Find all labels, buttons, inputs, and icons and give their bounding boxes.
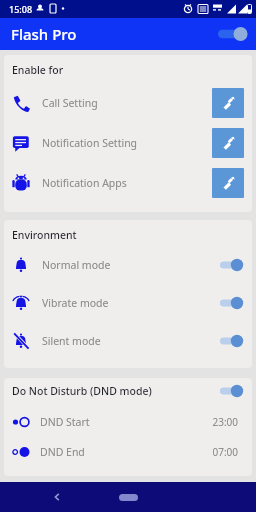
button[interactable]: DND End [4, 440, 252, 464]
button[interactable]: Configure Notification Setting [212, 128, 244, 158]
staticText: Vibrate mode [42, 296, 212, 310]
button[interactable]: Home [113, 489, 143, 505]
button[interactable]: Toggle [212, 256, 244, 274]
staticText: Do Not Disturb (DND mode) [12, 384, 212, 398]
button[interactable]: Master flash toggle [214, 23, 250, 45]
staticText: DND Start [40, 415, 212, 429]
staticText: Silent mode [42, 334, 212, 348]
button[interactable]: Silent mode [4, 322, 252, 360]
staticText: Enable for [12, 63, 64, 77]
button[interactable]: Call Setting [4, 83, 252, 123]
staticText: 23:00 [212, 415, 238, 429]
staticText: Notification Setting [42, 136, 212, 150]
staticText: Normal mode [42, 258, 212, 272]
staticText: Environment [12, 228, 77, 242]
button[interactable]: Normal mode [4, 246, 252, 284]
button[interactable]: Do Not Disturb (DND mode) [4, 378, 252, 404]
button[interactable]: Notification Setting [4, 123, 252, 163]
staticText: Notification Apps [42, 176, 212, 190]
button[interactable]: Toggle [212, 294, 244, 312]
staticText: Flash Pro [11, 24, 77, 44]
button[interactable]: Toggle [212, 332, 244, 350]
button[interactable]: Configure Call Setting [212, 88, 244, 118]
button[interactable]: Toggle [212, 382, 244, 400]
button[interactable]: Configure Notification Apps [212, 168, 244, 198]
staticText: Call Setting [42, 96, 212, 110]
button[interactable]: DND Start [4, 410, 252, 434]
staticText: 07:00 [212, 445, 238, 459]
button[interactable]: Notification Apps [4, 163, 252, 203]
button[interactable]: Vibrate mode [4, 284, 252, 322]
staticText: DND End [40, 445, 212, 459]
button[interactable]: Back [46, 486, 68, 508]
staticText: 15:08 [9, 3, 33, 15]
